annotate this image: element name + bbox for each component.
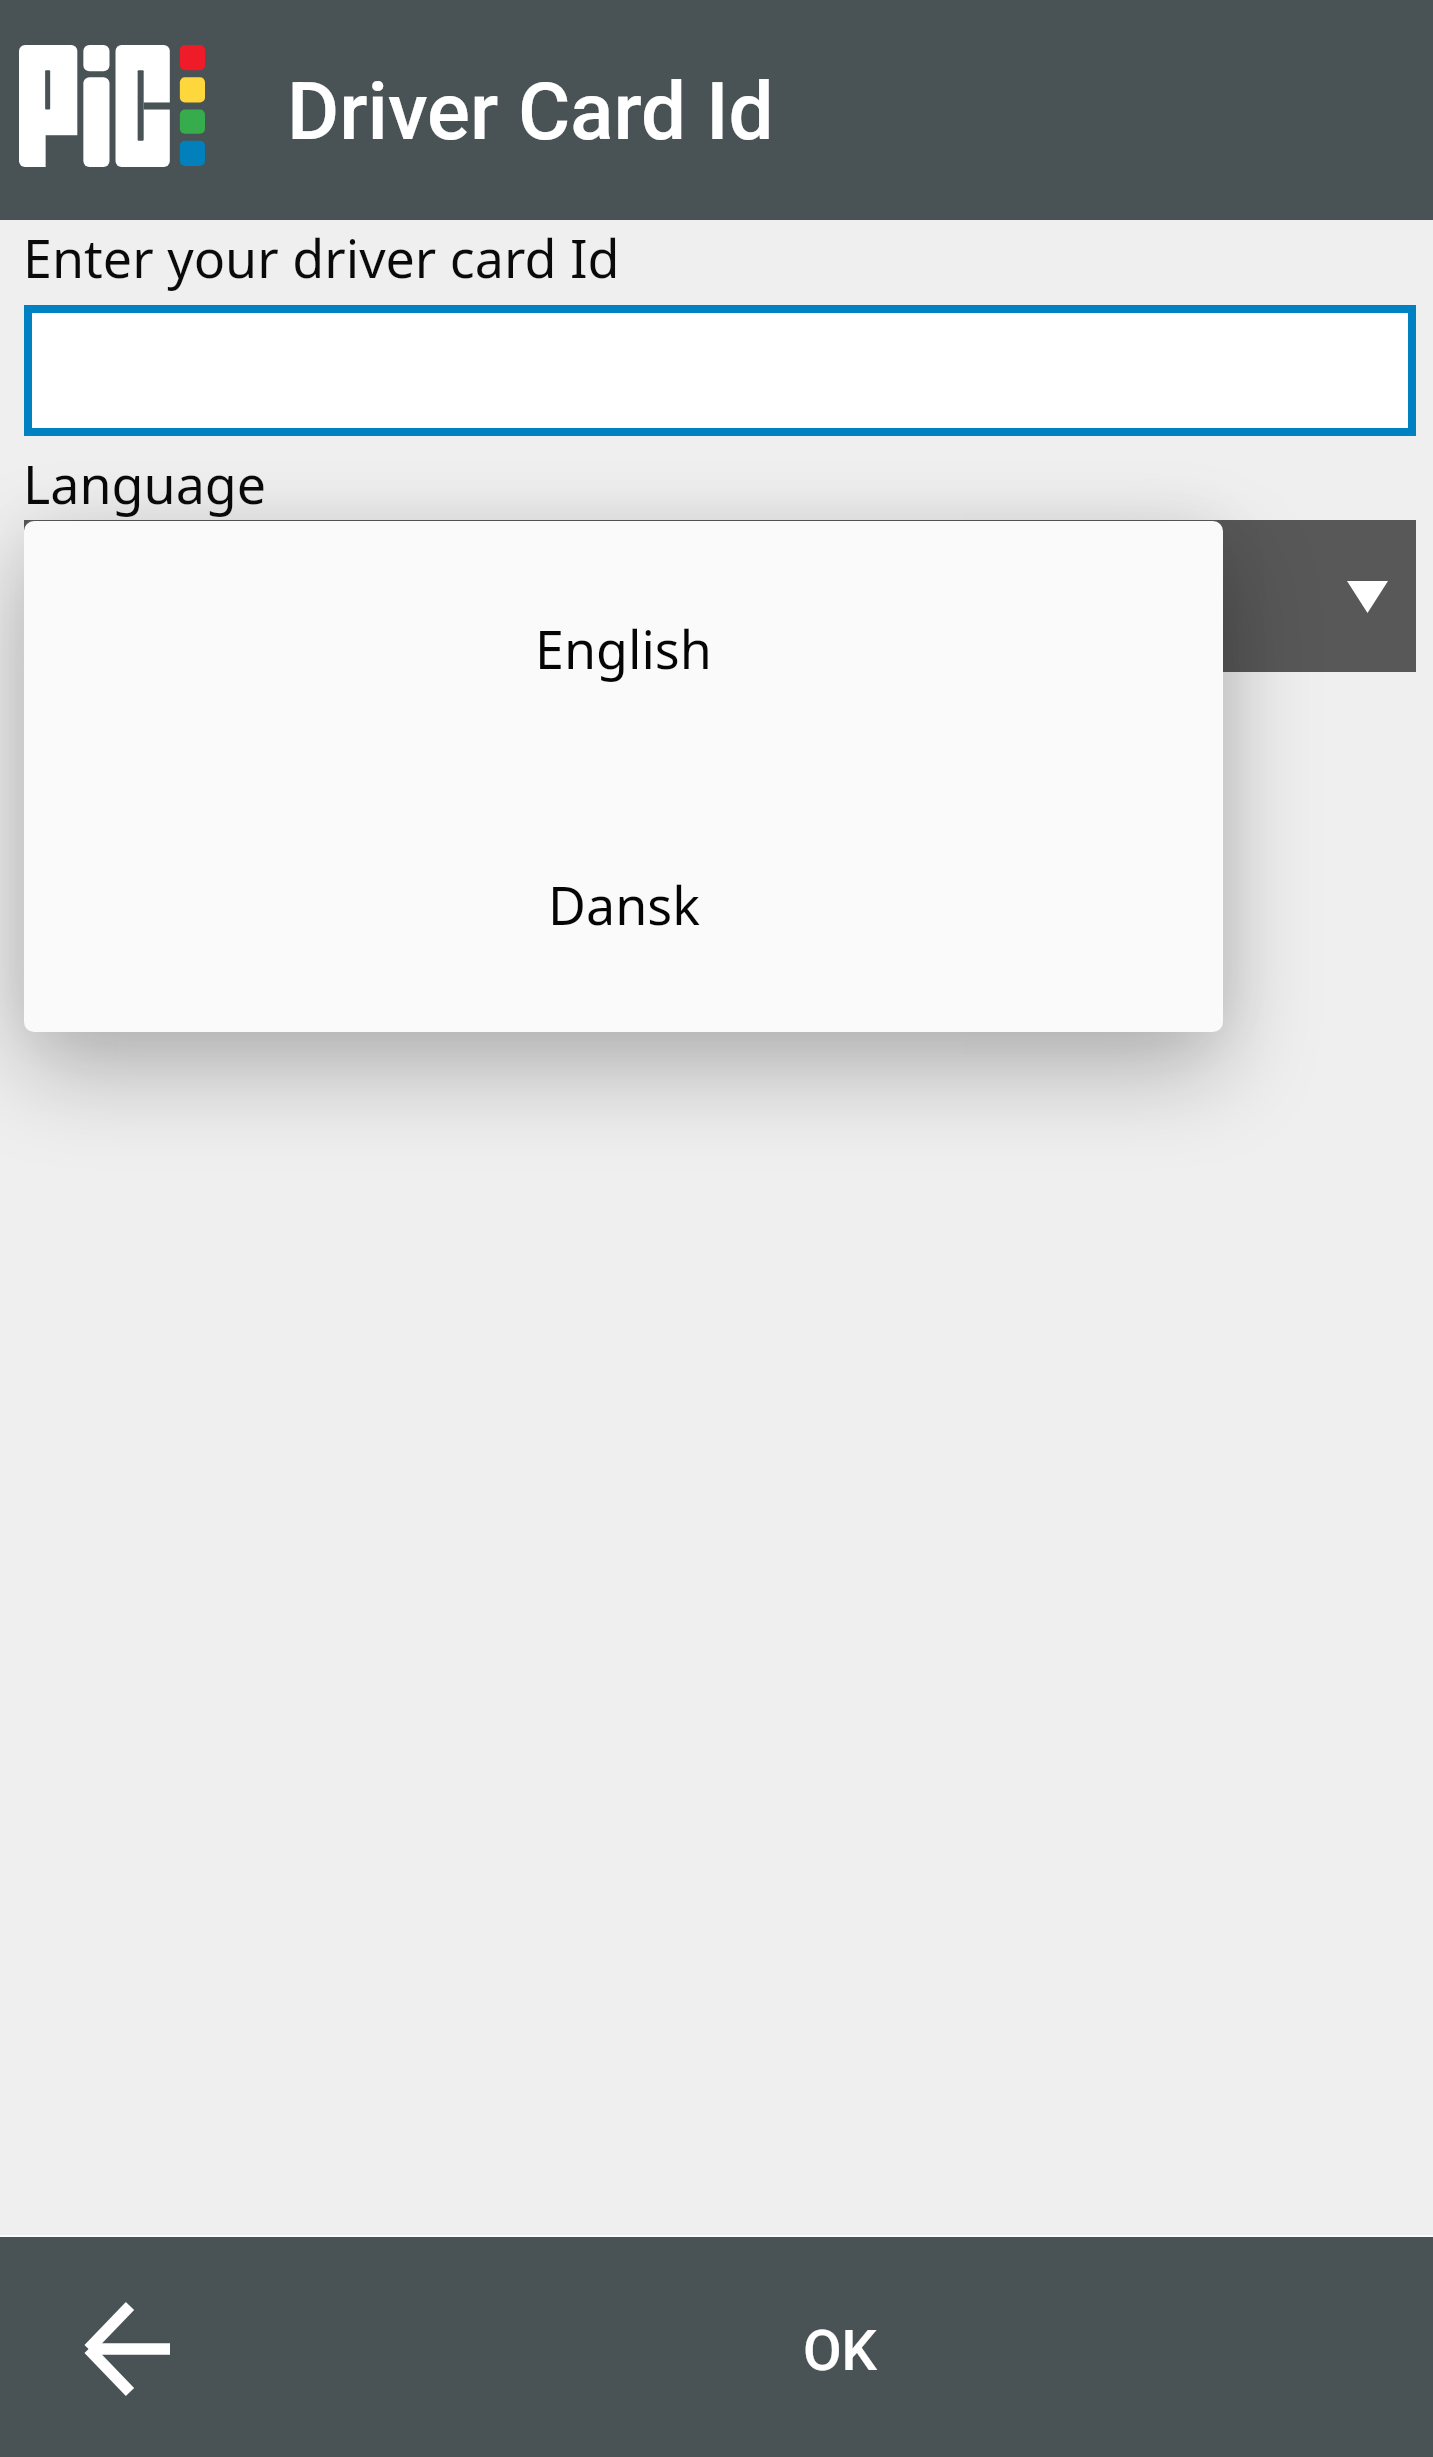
staticText: Dansk <box>548 869 700 940</box>
staticText: Enter your driver card Id <box>23 222 620 293</box>
button[interactable]: OK <box>600 2237 1080 2457</box>
button[interactable]: Language spinner <box>24 520 1416 672</box>
staticText: Driver Card Id <box>287 65 774 159</box>
button[interactable]: English <box>24 521 1223 776</box>
button[interactable]: Back <box>24 2237 224 2457</box>
staticText: Language <box>23 448 267 519</box>
staticText: OK <box>803 2318 877 2384</box>
staticText: English <box>535 613 712 684</box>
button[interactable]: Dansk <box>24 777 1223 1032</box>
